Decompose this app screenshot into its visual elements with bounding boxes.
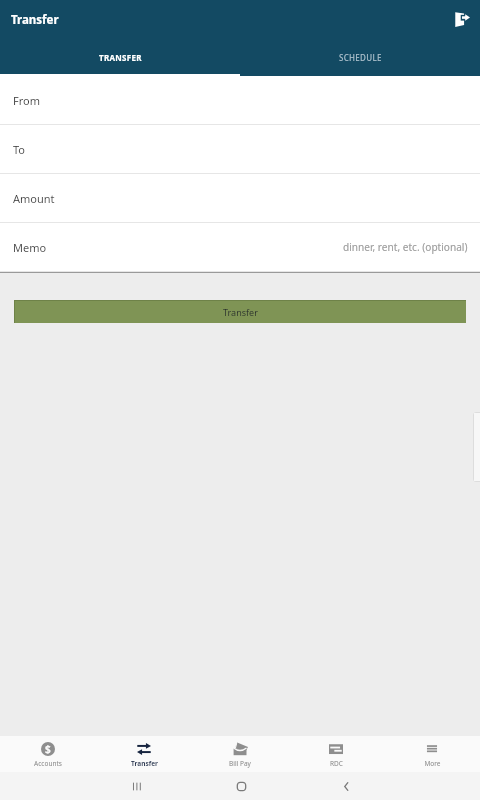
button[interactable]: Amount xyxy=(0,174,480,222)
button[interactable]: Recent apps xyxy=(121,772,151,800)
staticText: Bill Pay xyxy=(229,759,251,768)
button[interactable]: Transfer xyxy=(96,736,192,772)
staticText: To xyxy=(13,142,26,157)
staticText: SCHEDULE xyxy=(339,52,382,63)
staticText: $ xyxy=(45,742,51,756)
button[interactable]: Memo xyxy=(0,223,480,271)
staticText: More xyxy=(424,759,441,768)
button[interactable]: From xyxy=(0,76,480,124)
staticText: Memo xyxy=(13,240,47,255)
staticText: Transfer xyxy=(11,12,59,28)
button[interactable]: Back xyxy=(331,772,361,800)
button[interactable]: $ xyxy=(0,736,96,772)
staticText: TRANSFER xyxy=(99,52,142,63)
button[interactable]: SCHEDULE xyxy=(240,39,480,76)
button[interactable]: To xyxy=(0,125,480,173)
staticText: From xyxy=(13,93,40,108)
button[interactable]: Sign out xyxy=(450,8,474,32)
button[interactable]: Home xyxy=(226,772,256,800)
staticText: RDC xyxy=(330,759,343,768)
staticText: Accounts xyxy=(34,759,62,768)
staticText: Amount xyxy=(13,191,55,206)
button[interactable]: TRANSFER xyxy=(0,39,240,76)
button[interactable]: Bill Pay xyxy=(192,736,288,772)
staticText: Transfer xyxy=(223,306,258,318)
button[interactable]: More xyxy=(384,736,480,772)
staticText: Transfer xyxy=(131,759,158,768)
staticText: dinner, rent, etc. (optional) xyxy=(343,240,468,254)
button[interactable]: RDC xyxy=(288,736,384,772)
button[interactable]: Transfer xyxy=(15,301,466,323)
